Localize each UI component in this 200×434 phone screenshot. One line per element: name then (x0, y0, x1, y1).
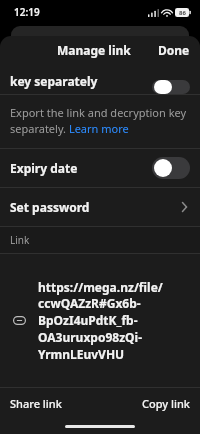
staticText: Copy link (142, 396, 190, 411)
button[interactable]: Copy link (134, 388, 200, 419)
button[interactable]: key separately (0, 64, 200, 94)
staticText: Done (158, 42, 190, 58)
staticText: https://mega.nz/file/ccwQAZzR#Gx6b-BpOzI… (38, 279, 186, 363)
staticText: key separately (10, 73, 152, 89)
button[interactable]: https://mega.nz/file/ccwQAZzR#Gx6b-BpOzI… (0, 254, 200, 387)
staticText: Link (10, 233, 30, 247)
staticText: 12:19 (14, 5, 40, 19)
button[interactable]: Manage link (57, 42, 131, 58)
staticText: Expiry date (10, 160, 152, 176)
button[interactable]: Set password (0, 188, 200, 226)
button[interactable]: Expiry date (0, 149, 200, 187)
staticText: Export the link and decryption key separ… (10, 105, 188, 136)
staticText: 86 (179, 9, 186, 17)
button[interactable]: Done (148, 38, 200, 62)
staticText: Set password (10, 199, 181, 215)
button[interactable]: Share link (0, 388, 70, 419)
button[interactable]: Toggle (152, 157, 190, 179)
staticText: Share link (10, 396, 62, 411)
